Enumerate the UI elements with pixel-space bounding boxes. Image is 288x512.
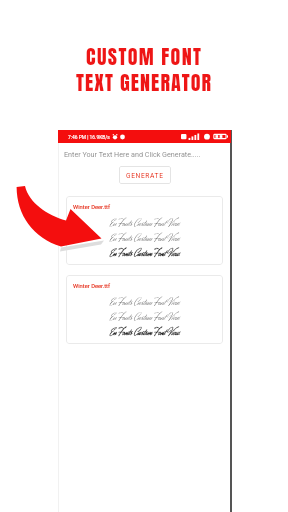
staticText: En Fonts Custom Font View <box>66 217 223 231</box>
button[interactable]: Winter Deer.ttf <box>66 196 223 265</box>
staticText: 7:46 PM | 16.9KB/s <box>68 134 110 140</box>
button[interactable]: GENERATE <box>119 166 171 184</box>
staticText: GENERATE <box>126 172 164 180</box>
other: Signal, wifi and battery status <box>181 133 228 140</box>
staticText: En Fonts Custom Font View <box>66 232 223 246</box>
staticText: En Fonts Custom Font View <box>66 247 223 261</box>
staticText: En Fonts Custom Font View <box>66 326 223 340</box>
staticText: Winter Deer.ttf <box>73 283 111 290</box>
staticText: Winter Deer.ttf <box>73 204 111 211</box>
button[interactable]: Enter Your Text Here and Click Generate.… <box>58 143 231 165</box>
staticText: Enter Your Text Here and Click Generate.… <box>64 150 201 158</box>
staticText: CUSTOM FONT <box>86 41 203 71</box>
staticText: En Fonts Custom Font View <box>66 296 223 310</box>
button[interactable]: Winter Deer.ttf <box>66 275 223 344</box>
staticText: En Fonts Custom Font View <box>66 311 223 325</box>
other: Alarm and location status <box>112 134 123 140</box>
staticText: TEXT GENERATOR <box>76 67 213 97</box>
